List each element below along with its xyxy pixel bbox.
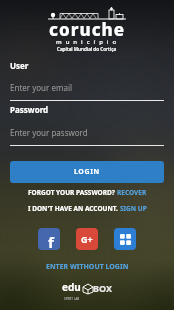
staticText: FORGOT YOUR PASSWORD? <box>28 188 117 197</box>
staticText: coruche <box>49 18 126 41</box>
staticText: SIGN UP <box>120 204 147 213</box>
staticText: Enter your password <box>10 127 88 138</box>
button[interactable]: f <box>38 228 60 250</box>
button[interactable]: LOGIN <box>10 161 164 183</box>
staticText: Password <box>10 104 49 115</box>
staticText: LOGIN <box>74 167 100 177</box>
staticText: Capital Mundial do Cortiça <box>57 46 117 52</box>
button[interactable]: FORGOT YOUR PASSWORD? <box>28 188 147 197</box>
button[interactable] <box>114 228 136 250</box>
button[interactable]: ENTER WITHOUT LOGIN <box>46 262 129 272</box>
button[interactable]: G+ <box>76 228 98 250</box>
staticText: SPIRIT LAB <box>64 297 80 301</box>
staticText: f <box>48 232 54 250</box>
staticText: G+ <box>81 233 93 245</box>
button[interactable]: I DON'T HAVE AN ACCOUNT. <box>28 204 147 213</box>
staticText: BOX <box>93 282 112 294</box>
staticText: Enter your email <box>10 82 73 93</box>
staticText: m u n i c í p i o <box>56 38 118 46</box>
staticText: ENTER WITHOUT LOGIN <box>46 262 129 272</box>
staticText: edu <box>62 280 81 294</box>
staticText: User <box>10 60 29 71</box>
staticText: I DON'T HAVE AN ACCOUNT. <box>28 204 120 213</box>
staticText: RECOVER <box>117 188 147 197</box>
